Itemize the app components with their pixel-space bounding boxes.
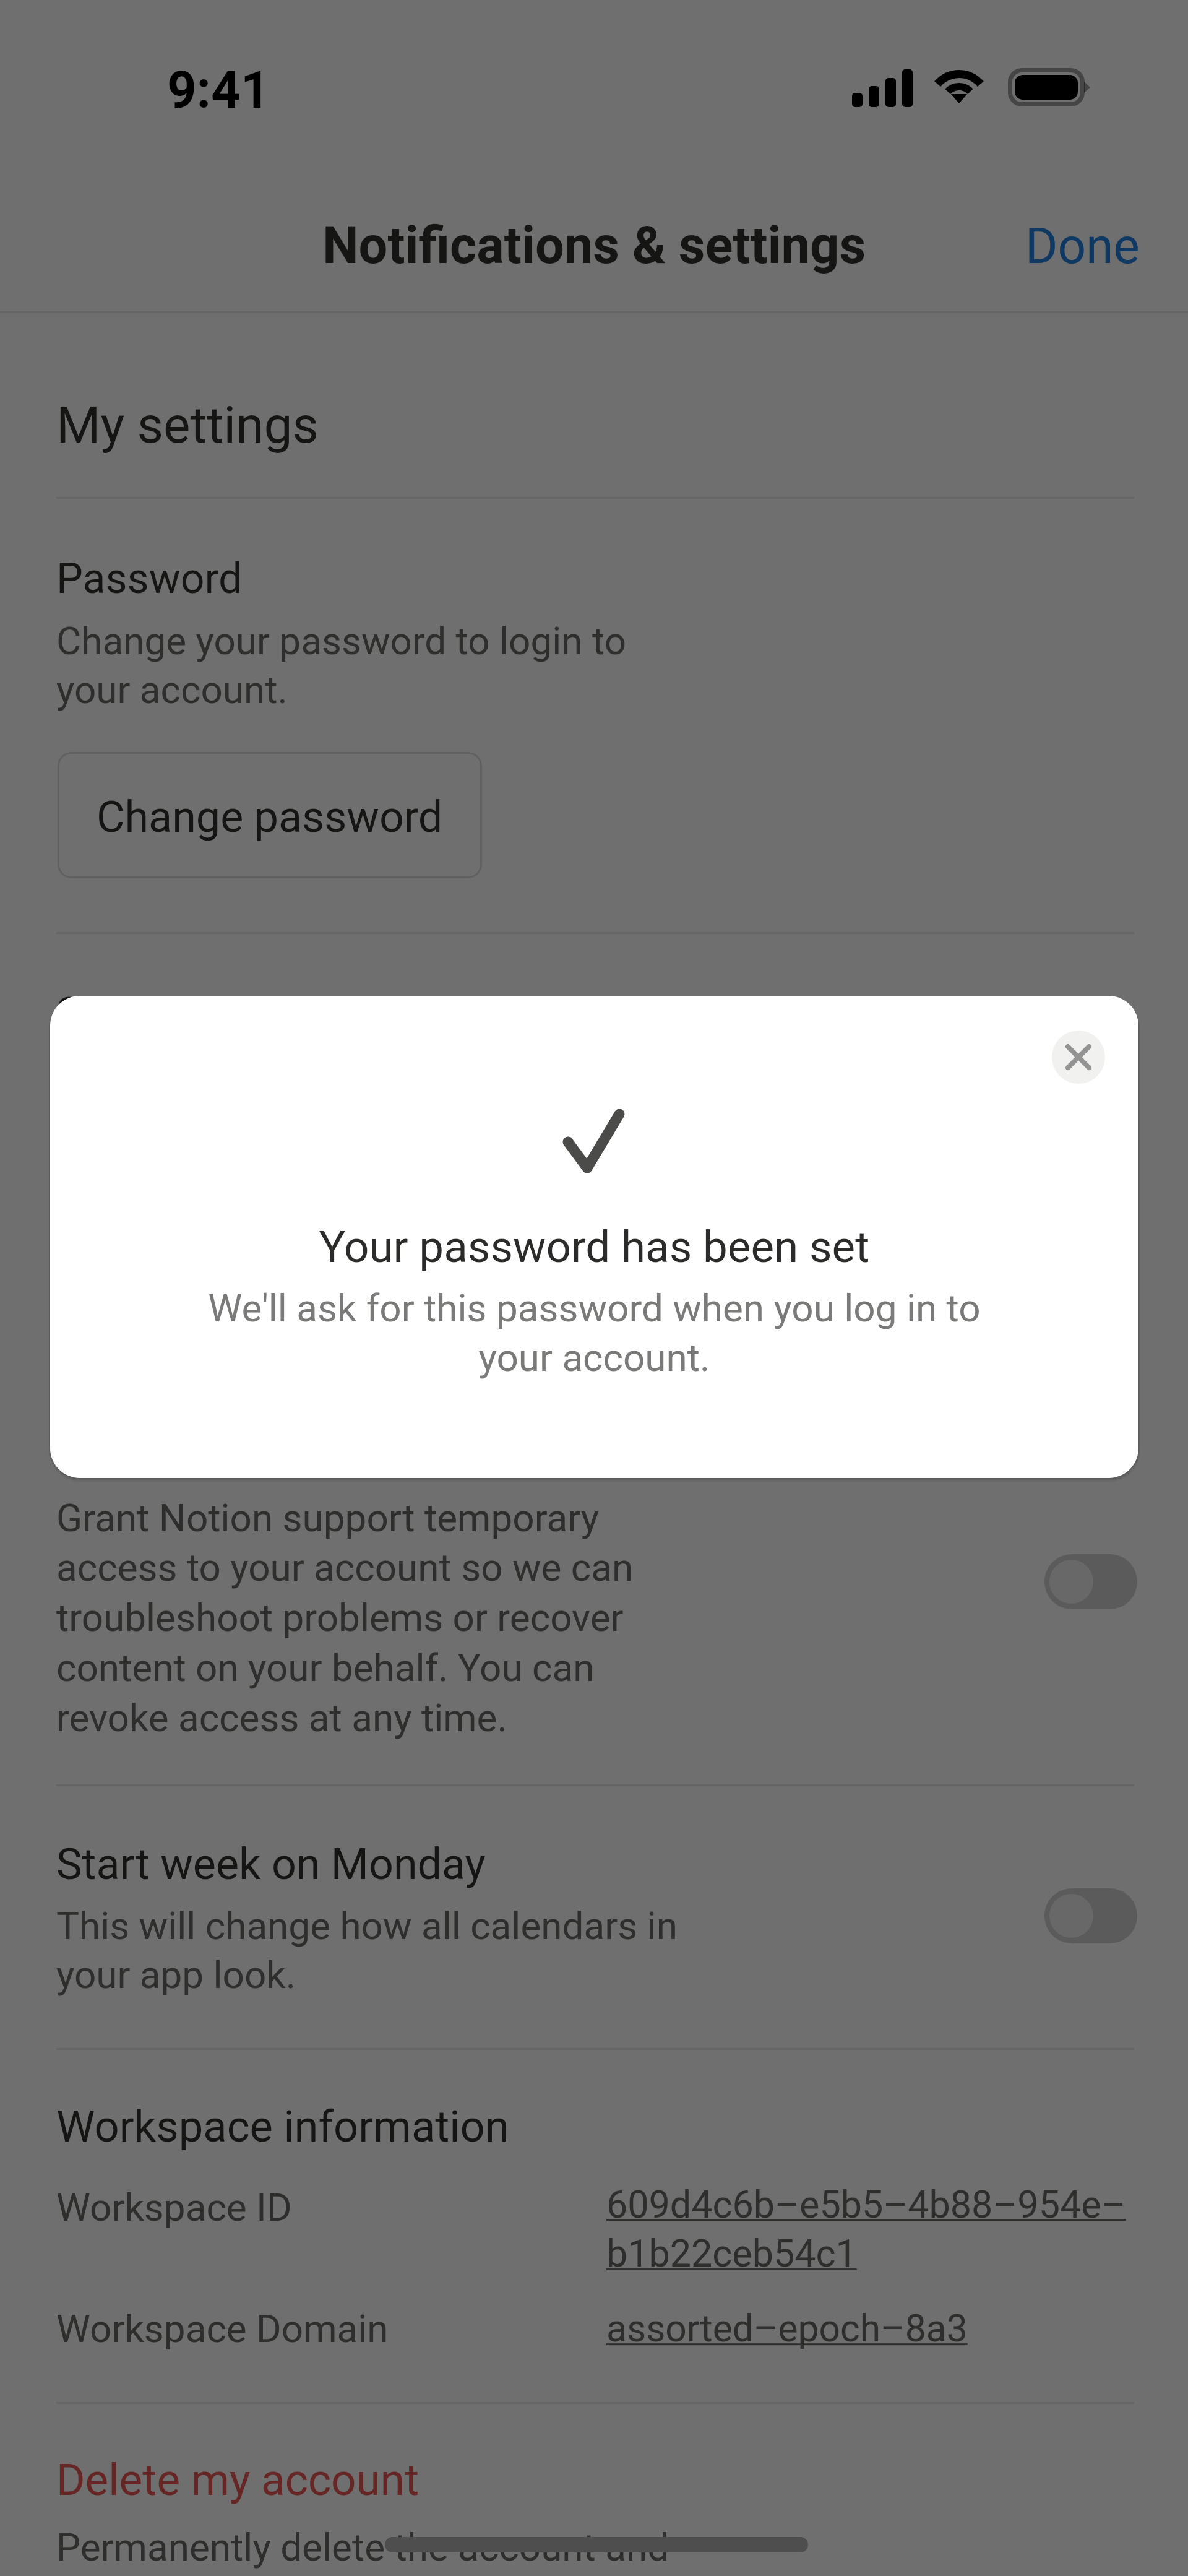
staticText: Done — [1025, 217, 1140, 275]
button[interactable]: Change password — [58, 752, 482, 878]
staticText: Change your password to login to your ac… — [56, 618, 627, 712]
staticText: My settings — [56, 395, 319, 455]
staticText: Change password — [97, 792, 443, 842]
staticText: Notifications & settings — [0, 215, 1188, 275]
button[interactable]: Toggle setting — [1044, 1554, 1137, 1609]
button[interactable]: Close — [1052, 1031, 1105, 1084]
staticText: Workspace information — [56, 2101, 509, 2153]
staticText: 9:41 — [167, 60, 270, 120]
staticText: Workspace Domain — [56, 2306, 389, 2351]
staticText: Grant Notion support temporary access to… — [56, 1495, 634, 1740]
button[interactable]: Done — [988, 201, 1140, 288]
button[interactable]: 609d4c6b–e5b5–4b88–954e– b1b22ceb54c1 — [0, 0, 520, 93]
staticText: We'll ask for this password when you log… — [50, 1286, 1138, 1380]
staticText: Password — [56, 554, 243, 603]
staticText: This will change how all calendars in yo… — [56, 1903, 678, 1997]
staticText: Support access — [56, 988, 348, 1038]
staticText: Your password has been set — [50, 1221, 1138, 1273]
button[interactable]: Toggle setting — [1044, 1888, 1137, 1943]
staticText: Delete my account — [56, 2454, 420, 2505]
staticText: Permanently delete the account and — [56, 2525, 669, 2570]
button[interactable]: Delete my account — [56, 2452, 420, 2504]
staticText: Workspace ID — [56, 2185, 292, 2230]
staticText: Start week on Monday — [56, 1839, 486, 1890]
